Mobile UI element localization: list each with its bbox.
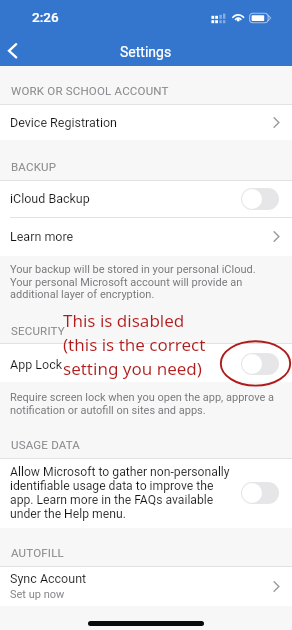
button[interactable]: Back bbox=[0, 34, 26, 66]
staticText: WORK OR SCHOOL ACCOUNT bbox=[11, 84, 169, 97]
staticText: Device Registration bbox=[10, 115, 273, 130]
staticText: Require screen lock when you open the ap… bbox=[10, 391, 274, 416]
staticText: Settings bbox=[120, 44, 172, 60]
staticText: BACKUP bbox=[11, 160, 57, 173]
staticText: Sync Account bbox=[10, 571, 87, 586]
button[interactable]: Toggle off bbox=[241, 188, 279, 210]
staticText: Set up now bbox=[10, 588, 65, 601]
staticText: Your backup will be stored in your perso… bbox=[10, 263, 256, 300]
button[interactable]: Device Registration bbox=[0, 104, 292, 140]
staticText: Allow Microsoft to gather non-personally… bbox=[10, 465, 235, 521]
button[interactable]: Allow Microsoft to gather non-personally… bbox=[0, 458, 292, 528]
button[interactable]: iCloud Backup bbox=[0, 180, 292, 217]
button[interactable]: Learn more bbox=[0, 217, 292, 256]
staticText: Learn more bbox=[10, 229, 273, 244]
staticText: AUTOFILL bbox=[11, 546, 64, 559]
button[interactable]: Sync Account bbox=[0, 566, 292, 606]
staticText: 2:26 bbox=[32, 9, 59, 25]
button[interactable]: App Lock bbox=[0, 343, 292, 382]
button[interactable]: Toggle off bbox=[241, 353, 279, 375]
button[interactable]: Toggle off bbox=[241, 482, 279, 504]
staticText: SECURITY bbox=[11, 324, 65, 337]
staticText: USAGE DATA bbox=[11, 438, 81, 451]
staticText: This is disabled (this is the correct se… bbox=[63, 309, 206, 380]
staticText: App Lock bbox=[10, 357, 241, 372]
staticText: iCloud Backup bbox=[10, 191, 241, 206]
